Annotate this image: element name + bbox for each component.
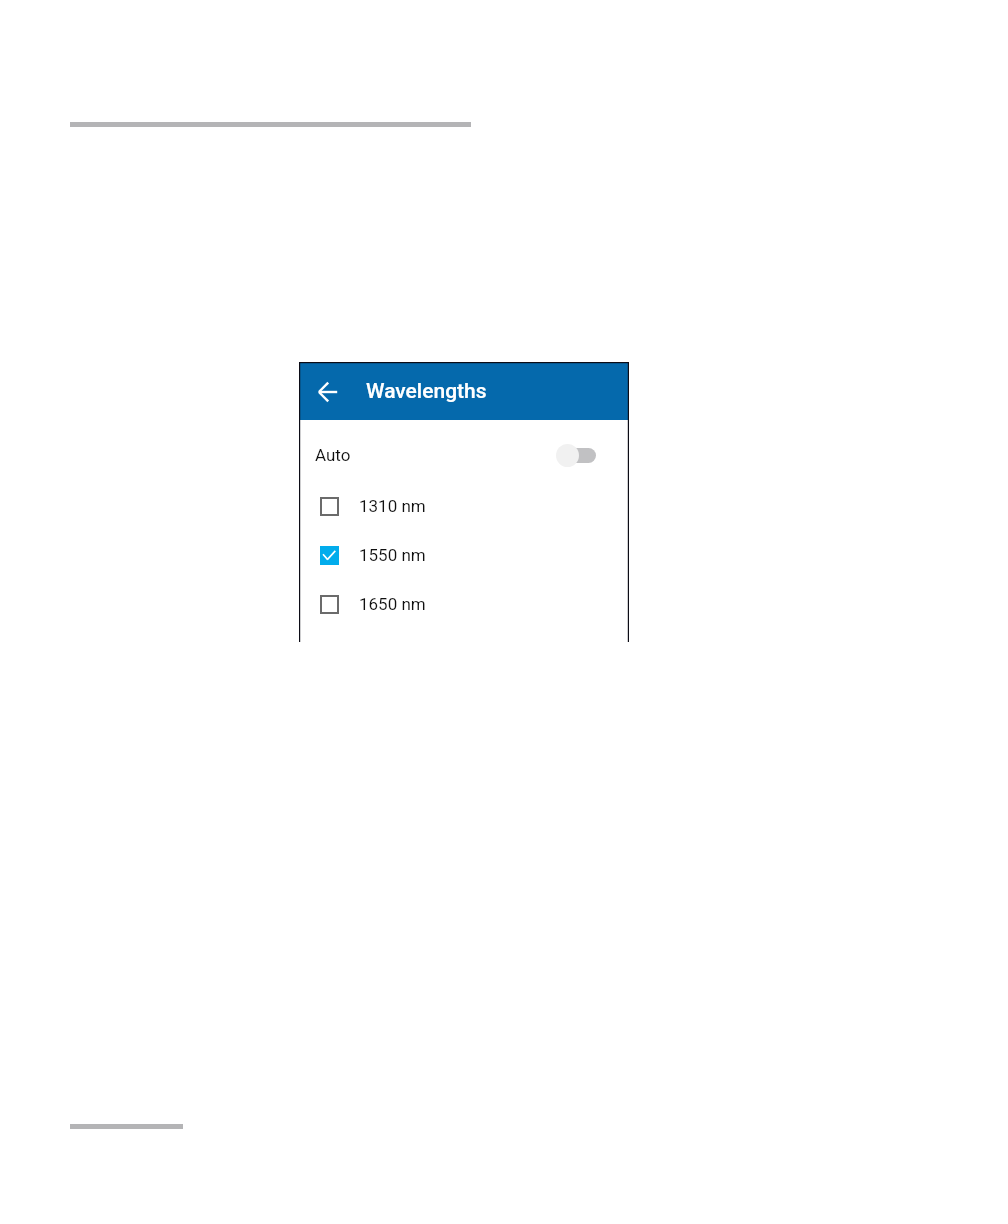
button[interactable]: Auto, off — [556, 444, 596, 467]
button[interactable]: 1650 nm — [300, 579, 628, 628]
staticText: 1310 nm — [359, 496, 426, 516]
button[interactable]: 1310 nm — [300, 481, 628, 530]
button[interactable]: 1550 nm — [300, 530, 628, 579]
staticText: 1650 nm — [359, 594, 426, 614]
staticText: Wavelengths — [366, 379, 487, 404]
button[interactable]: Auto — [300, 420, 628, 475]
button[interactable]: Navigate up — [308, 372, 346, 410]
staticText: Auto — [315, 445, 351, 465]
staticText: 1550 nm — [359, 545, 426, 565]
